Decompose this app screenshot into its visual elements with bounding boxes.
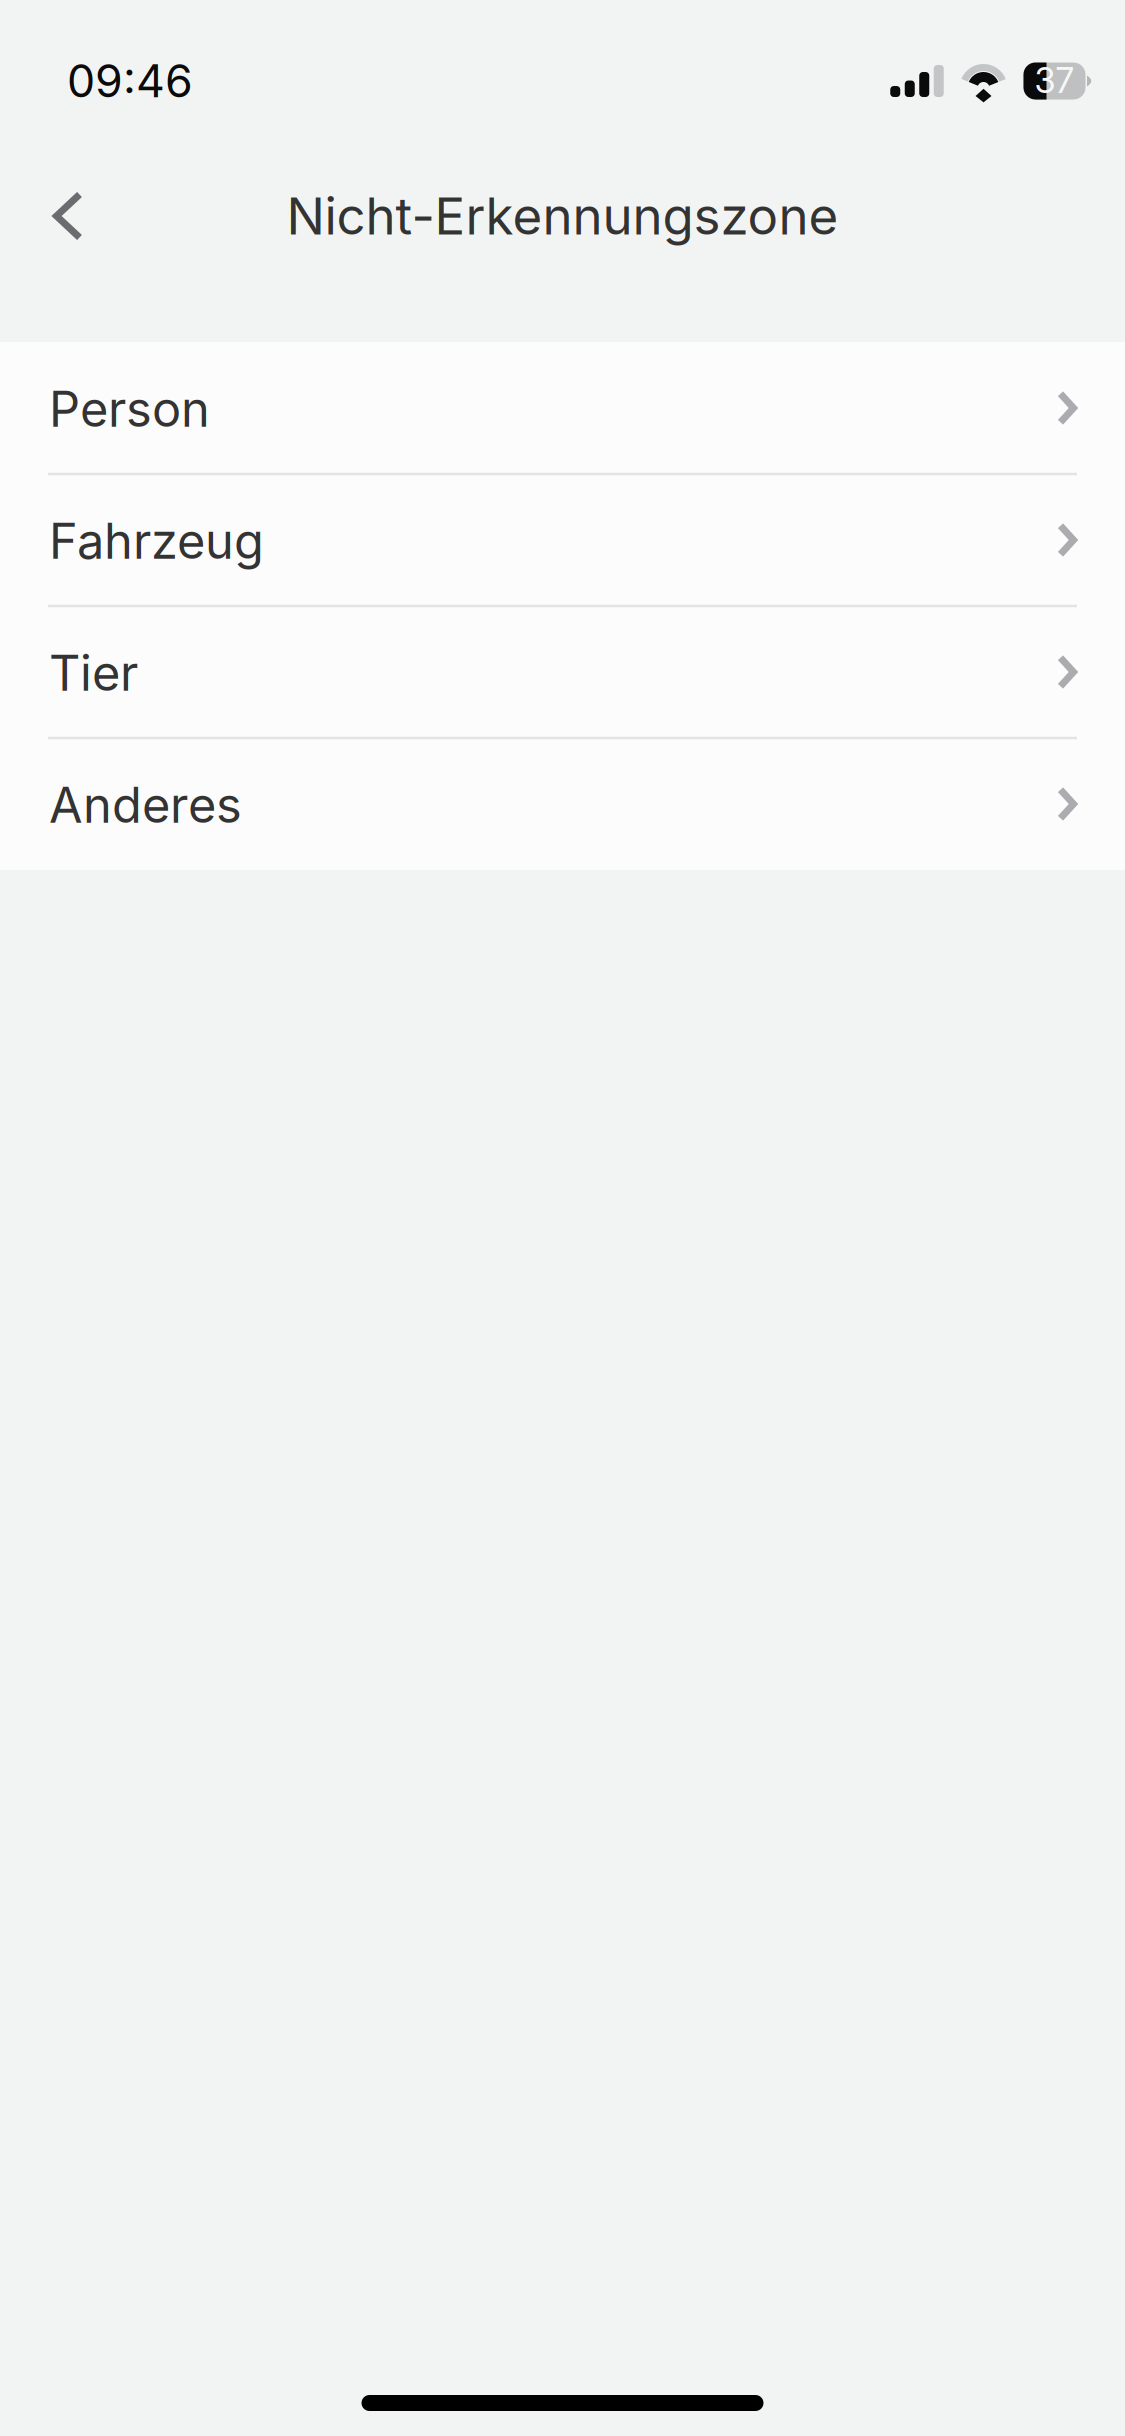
staticText: Fahrzeug <box>49 512 264 570</box>
button[interactable]: Anderes <box>0 738 1125 870</box>
button[interactable]: Tier <box>0 606 1125 738</box>
button[interactable]: Person <box>0 342 1125 474</box>
button[interactable]: Fahrzeug <box>0 474 1125 606</box>
staticText: Tier <box>49 644 138 702</box>
staticText: 09:46 <box>67 54 193 108</box>
button[interactable]: Back <box>0 150 127 282</box>
staticText: Nicht-Erkennungszone <box>286 185 838 247</box>
staticText: Anderes <box>49 776 242 834</box>
staticText: Person <box>49 380 210 438</box>
staticText: 37 <box>1034 59 1073 101</box>
